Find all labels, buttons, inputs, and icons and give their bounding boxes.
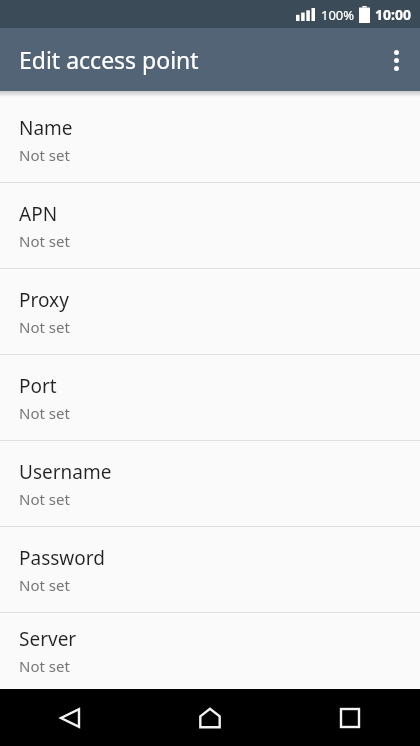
button[interactable]: More options: [372, 36, 420, 84]
staticText: Proxy: [19, 287, 69, 313]
staticText: Port: [19, 373, 57, 399]
staticText: Server: [19, 626, 77, 652]
button[interactable]: APN: [0, 183, 420, 268]
staticText: Not set: [19, 231, 70, 251]
button[interactable]: Password: [0, 527, 420, 612]
button[interactable]: Home: [186, 694, 234, 742]
button[interactable]: Recent apps: [326, 694, 374, 742]
button[interactable]: Port: [0, 355, 420, 440]
staticText: Not set: [19, 575, 70, 595]
button[interactable]: Proxy: [0, 269, 420, 354]
staticText: Name: [19, 115, 73, 141]
staticText: Not set: [19, 489, 70, 509]
button[interactable]: Back: [46, 694, 94, 742]
staticText: Username: [19, 459, 112, 485]
staticText: Not set: [19, 403, 70, 423]
button[interactable]: Server: [0, 613, 420, 689]
staticText: Not set: [19, 317, 70, 337]
staticText: Password: [19, 545, 105, 571]
staticText: 100%: [321, 6, 355, 24]
button[interactable]: Username: [0, 441, 420, 526]
staticText: APN: [19, 201, 58, 227]
staticText: Not set: [19, 656, 70, 676]
staticText: 10:00: [375, 5, 411, 24]
staticText: Edit access point: [19, 44, 199, 75]
staticText: Not set: [19, 145, 70, 165]
button[interactable]: Name: [0, 97, 420, 182]
